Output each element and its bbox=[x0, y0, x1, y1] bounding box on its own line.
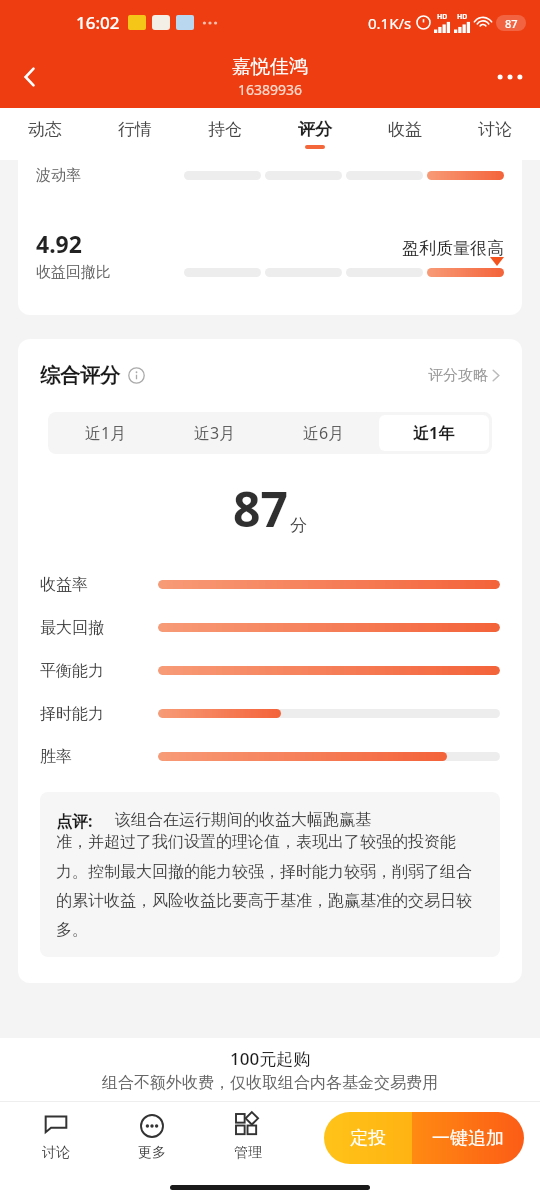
staticText: 近6月 bbox=[303, 422, 345, 444]
button[interactable]: 动态 bbox=[0, 108, 90, 160]
staticText: 平衡能力 bbox=[40, 661, 104, 681]
staticText: 评分 bbox=[298, 119, 332, 140]
button[interactable]: 讨论 bbox=[8, 1102, 104, 1174]
staticText: 100元起购 bbox=[230, 1047, 311, 1070]
staticText: 更多 bbox=[138, 1144, 166, 1162]
staticText: 动态 bbox=[28, 119, 62, 140]
staticText: 择时能力 bbox=[40, 704, 104, 724]
button[interactable]: 近6月 bbox=[269, 415, 379, 451]
staticText: 近1月 bbox=[85, 422, 127, 444]
staticText: 持仓 bbox=[208, 119, 242, 140]
staticText: 16389936 bbox=[238, 80, 303, 99]
button[interactable]: 讨论 bbox=[450, 108, 540, 160]
staticText: 该组合在运行期间的收益大幅跑赢基 bbox=[115, 810, 371, 830]
button[interactable]: 收益 bbox=[360, 108, 450, 160]
button[interactable]: 定投 bbox=[324, 1112, 412, 1164]
staticText: 近3月 bbox=[194, 422, 236, 444]
staticText: 4.92 bbox=[36, 228, 82, 259]
staticText: 87 bbox=[233, 476, 288, 541]
staticText: 分 bbox=[290, 515, 307, 536]
staticText: 一键追加 bbox=[432, 1127, 504, 1150]
staticText: 行情 bbox=[118, 119, 152, 140]
button[interactable]: 行情 bbox=[90, 108, 180, 160]
staticText: 定投 bbox=[350, 1127, 386, 1150]
button[interactable]: 更多 bbox=[104, 1102, 200, 1174]
button[interactable]: 近3月 bbox=[160, 415, 269, 451]
staticText: 嘉悦佳鸿 bbox=[232, 55, 308, 79]
staticText: 管理 bbox=[234, 1144, 262, 1162]
staticText: 准，并超过了我们设置的理论值，表现出了较强的投资能力。控制最大回撤的能力较强，择… bbox=[56, 832, 484, 939]
staticText: 讨论 bbox=[478, 119, 512, 140]
button[interactable]: 一键追加 bbox=[412, 1112, 524, 1164]
staticText: 讨论 bbox=[42, 1144, 70, 1162]
staticText: 0.1K/s bbox=[368, 13, 412, 33]
button[interactable]: 评分 bbox=[270, 108, 360, 160]
staticText: 评分攻略 bbox=[428, 366, 488, 385]
staticText: 收益率 bbox=[40, 575, 88, 595]
button[interactable]: 持仓 bbox=[180, 108, 270, 160]
staticText: 16:02 bbox=[76, 11, 120, 34]
staticText: 波动率 bbox=[36, 166, 81, 185]
staticText: 点评: bbox=[56, 810, 93, 832]
staticText: HD bbox=[437, 12, 448, 22]
staticText: 收益 bbox=[388, 119, 422, 140]
button[interactable]: More options bbox=[486, 53, 534, 101]
staticText: 87 bbox=[505, 16, 518, 31]
staticText: HD bbox=[457, 12, 468, 22]
staticText: 综合评分 bbox=[40, 363, 120, 388]
staticText: 收益回撤比 bbox=[36, 263, 111, 282]
staticText: 组合不额外收费，仅收取组合内各基金交易费用 bbox=[102, 1073, 438, 1093]
button[interactable]: 近1年 bbox=[379, 415, 489, 451]
staticText: 胜率 bbox=[40, 747, 72, 767]
staticText: 最大回撤 bbox=[40, 618, 104, 638]
button[interactable]: Back bbox=[6, 53, 54, 101]
button[interactable]: 评分攻略 bbox=[428, 366, 500, 385]
button[interactable]: 近1月 bbox=[51, 415, 160, 451]
staticText: 盈利质量很高 bbox=[402, 238, 504, 259]
button[interactable]: 管理 bbox=[200, 1102, 296, 1174]
staticText: 近1年 bbox=[413, 422, 455, 444]
